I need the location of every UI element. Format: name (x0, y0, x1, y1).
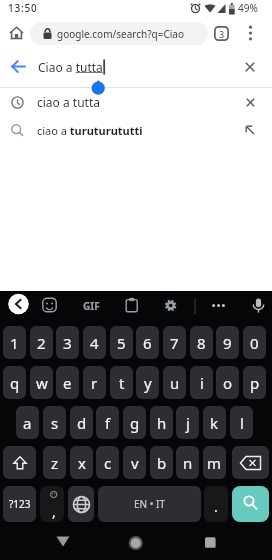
button[interactable] (232, 446, 269, 479)
staticText: , (52, 502, 56, 521)
button[interactable]: a (16, 406, 39, 439)
button[interactable]: k (203, 406, 226, 439)
button[interactable]: 9 (216, 326, 239, 359)
button[interactable]: Ciao a tutta (0, 50, 272, 83)
button[interactable] (3, 446, 36, 479)
button[interactable]: p (243, 366, 266, 399)
staticText: f (105, 413, 111, 433)
staticText: n (183, 453, 193, 473)
staticText: a (23, 413, 32, 433)
button[interactable]: ciao a tutta (0, 88, 272, 116)
button[interactable]: 3 (214, 26, 229, 41)
button[interactable]: z (43, 446, 66, 479)
button[interactable]: u (163, 366, 186, 399)
button[interactable]: d (70, 406, 93, 439)
staticText: 8 (197, 333, 206, 353)
staticText: l (240, 413, 244, 433)
staticText: Ciao a tutta (38, 59, 103, 75)
staticText: ciao a turuturututti (37, 123, 143, 138)
button[interactable]: v (123, 446, 146, 479)
staticText: t (119, 373, 125, 393)
button[interactable]: o (216, 366, 239, 399)
staticText: 6 (143, 333, 152, 353)
button[interactable] (0, 530, 90, 560)
button[interactable]: f (96, 406, 119, 439)
button[interactable]: w (30, 366, 53, 399)
staticText: 7 (170, 333, 179, 353)
staticText: google.com/search?q=Ciao (57, 27, 184, 41)
button[interactable]: google.com/search?q=Ciao (30, 22, 208, 45)
staticText: q (10, 373, 20, 393)
button[interactable] (245, 125, 255, 135)
button[interactable]: n (176, 446, 199, 479)
button[interactable]: GIF (78, 296, 105, 315)
button[interactable] (207, 295, 230, 317)
button[interactable]: 1 (3, 326, 26, 359)
button[interactable]: c (96, 446, 119, 479)
staticText: r (91, 373, 98, 393)
staticText: 3 (219, 28, 225, 40)
button[interactable]: EN • IT (98, 486, 201, 522)
button[interactable]: 4 (83, 326, 106, 359)
staticText: b (157, 453, 167, 473)
button[interactable]: e (56, 366, 79, 399)
button[interactable]: 3 (56, 326, 79, 359)
button[interactable]: s (43, 406, 66, 439)
staticText: 5 (117, 333, 126, 353)
button[interactable] (248, 295, 269, 317)
staticText: x (78, 453, 86, 473)
staticText: 49% (238, 1, 258, 15)
button[interactable] (8, 25, 25, 42)
staticText: EN • IT (134, 497, 166, 511)
button[interactable]: i (190, 366, 213, 399)
staticText: u (170, 373, 180, 393)
button[interactable]: 6 (136, 326, 159, 359)
button[interactable]: h (150, 406, 173, 439)
button[interactable]: 2 (30, 326, 53, 359)
button[interactable]: g (123, 406, 146, 439)
button[interactable] (123, 295, 141, 317)
staticText: GIF (83, 299, 100, 313)
button[interactable]: x (70, 446, 93, 479)
staticText: m (207, 453, 222, 473)
button[interactable] (247, 25, 254, 41)
button[interactable]: j (176, 406, 199, 439)
button[interactable] (40, 295, 60, 317)
button[interactable]: ?123 (3, 486, 36, 522)
button[interactable] (161, 295, 181, 317)
button[interactable]: 0 (243, 326, 266, 359)
button[interactable]: 5 (110, 326, 133, 359)
button[interactable]: ciao a turuturututti (0, 116, 272, 144)
button[interactable] (90, 530, 181, 560)
button[interactable] (6, 292, 31, 317)
button[interactable]: m (203, 446, 226, 479)
button[interactable]: . (204, 486, 228, 522)
button[interactable] (246, 98, 255, 107)
button[interactable]: r (83, 366, 106, 399)
staticText: w (36, 373, 48, 393)
button[interactable]: y (136, 366, 159, 399)
button[interactable]: , (40, 486, 64, 522)
staticText: d (77, 413, 87, 433)
button[interactable] (181, 530, 272, 560)
button[interactable]: 8 (190, 326, 213, 359)
staticText: 0 (250, 333, 259, 353)
staticText: . (214, 497, 218, 516)
staticText: 13:50 (8, 1, 38, 15)
button[interactable] (245, 62, 255, 72)
button[interactable] (68, 486, 94, 522)
staticText: g (130, 413, 140, 433)
button[interactable]: t (110, 366, 133, 399)
staticText: z (51, 453, 59, 473)
staticText: h (157, 413, 167, 433)
button[interactable]: l (230, 406, 253, 439)
button[interactable] (232, 486, 269, 522)
staticText: 2 (37, 333, 46, 353)
staticText: 9 (223, 333, 232, 353)
staticText: p (250, 373, 260, 393)
button[interactable]: b (150, 446, 173, 479)
button[interactable]: q (3, 366, 26, 399)
staticText: s (51, 413, 59, 433)
staticText: 1 (10, 333, 19, 353)
button[interactable]: 7 (163, 326, 186, 359)
